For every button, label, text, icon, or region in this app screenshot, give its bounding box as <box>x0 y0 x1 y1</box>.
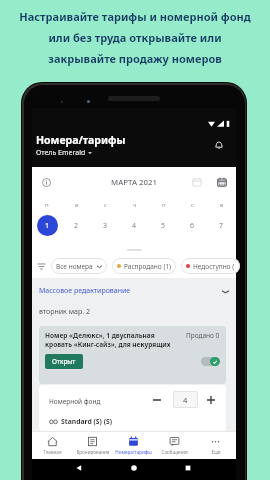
staticText: Бронирования <box>76 449 110 455</box>
button[interactable]: Все номера <box>51 258 107 274</box>
button[interactable]: Бронирования <box>72 432 113 459</box>
button[interactable]: Распродано (1) <box>112 258 176 274</box>
staticText: ч <box>133 201 137 209</box>
staticText: Отель Emerald <box>36 148 86 158</box>
staticText: или без труда открывайте или <box>48 30 222 45</box>
button[interactable]: 7 <box>211 215 232 236</box>
button[interactable]: Back <box>74 463 84 473</box>
button[interactable]: Week view <box>192 177 202 187</box>
staticText: МАРТА 2021 <box>32 177 236 188</box>
staticText: Настраивайте тарифы и номерной фонд <box>19 9 251 24</box>
staticText: Сообщения <box>161 449 188 455</box>
staticText: 1 <box>45 221 50 231</box>
staticText: закрывайте продажу номеров <box>48 51 222 66</box>
button[interactable]: 2 <box>66 215 87 236</box>
button[interactable]: Increase <box>205 394 217 406</box>
staticText: с <box>191 201 194 209</box>
button[interactable]: Home <box>129 463 139 473</box>
button[interactable] <box>201 357 220 366</box>
staticText: 2 <box>74 221 79 231</box>
staticText: с <box>104 201 107 209</box>
button[interactable]: 3 <box>95 215 116 236</box>
staticText: Массовое редактирование <box>39 286 131 296</box>
staticText: 4 <box>183 395 188 405</box>
button[interactable]: Decrease <box>151 394 163 406</box>
staticText: 5 <box>161 221 166 231</box>
staticText: Номер «Делюкс», 1 двуспальная кровать «К… <box>45 331 183 349</box>
button[interactable]: Recents <box>183 463 193 473</box>
button[interactable]: Сообщения <box>154 432 195 459</box>
staticText: п <box>162 201 166 209</box>
staticText: 7 <box>219 221 224 231</box>
button[interactable]: Filter <box>36 261 47 272</box>
staticText: Открыт <box>52 357 76 366</box>
button[interactable]: Недоступно ( <box>181 258 240 274</box>
staticText: 4 <box>132 221 137 231</box>
button[interactable]: Month view <box>217 177 227 187</box>
staticText: Ещё <box>211 449 221 455</box>
button[interactable]: Info <box>42 178 51 187</box>
staticText: 3 <box>103 221 108 231</box>
staticText: Standard (S) (S) <box>61 417 112 426</box>
staticText: Номера/тарифы <box>115 449 152 455</box>
staticText: в <box>220 201 224 209</box>
button[interactable]: 5 <box>153 215 174 236</box>
button[interactable]: Ещё <box>195 432 236 459</box>
staticText: Главная <box>43 449 62 455</box>
staticText: Распродано (1) <box>124 262 171 271</box>
button[interactable]: 6 <box>182 215 203 236</box>
button[interactable]: Номера/тарифы <box>113 432 154 459</box>
staticText: Все номера <box>56 262 93 271</box>
staticText: п <box>45 201 49 209</box>
button[interactable]: Notifications <box>214 140 224 150</box>
button[interactable]: Открыт <box>45 354 83 369</box>
button[interactable]: 4 <box>124 215 145 236</box>
button[interactable]: Главная <box>32 432 72 459</box>
staticText: Номерной фонд <box>49 397 101 406</box>
staticText: в <box>75 201 79 209</box>
button[interactable]: Массовое редактирование <box>32 278 236 304</box>
button[interactable]: 1 <box>37 215 58 236</box>
staticText: Недоступно ( <box>193 262 235 271</box>
staticText: Продано 0 <box>186 331 220 340</box>
staticText: 6 <box>190 221 195 231</box>
staticText: вторник мар. 2 <box>39 307 90 317</box>
staticText: Номера/тарифы <box>36 133 126 147</box>
